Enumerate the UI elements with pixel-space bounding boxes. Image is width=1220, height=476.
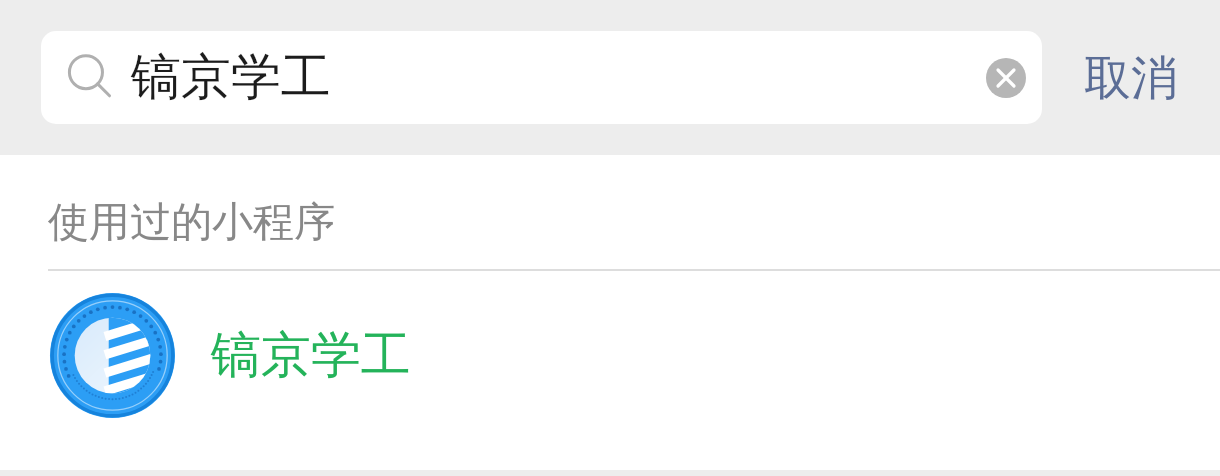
staticText: 镐京学工 [131, 46, 331, 109]
button[interactable]: 镐京学工 [0, 271, 1220, 439]
button[interactable]: Clear search [971, 43, 1041, 113]
staticText: 使用过的小程序 [48, 197, 335, 249]
staticText: 镐京学工 [211, 324, 411, 387]
button[interactable]: 镐京学工 [41, 31, 1042, 124]
button[interactable]: 取消 [1042, 28, 1220, 128]
staticText: 取消 [1084, 49, 1178, 108]
